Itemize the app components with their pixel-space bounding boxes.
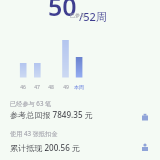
staticText: 累计抵现 200.56 元: [10, 142, 81, 153]
other: Rewards: [141, 143, 149, 151]
staticText: 47: [29, 84, 45, 91]
staticText: 本周: [71, 84, 87, 90]
other: Investments: [141, 113, 149, 121]
staticText: 参考总回报 7849.35 元: [10, 109, 93, 120]
button[interactable]: 已经参与 63 笔: [0, 99, 160, 123]
staticText: 46: [15, 84, 31, 91]
staticText: 49: [58, 84, 74, 91]
staticText: 已参与: [70, 12, 85, 18]
staticText: 50: [48, 0, 77, 23]
staticText: 使用 43 张抵扣金: [10, 129, 58, 137]
staticText: 48: [43, 84, 59, 91]
staticText: 已经参与 63 笔: [10, 99, 52, 107]
button[interactable]: 使用 43 张抵扣金: [0, 129, 160, 153]
staticText: /52周: [79, 9, 107, 24]
